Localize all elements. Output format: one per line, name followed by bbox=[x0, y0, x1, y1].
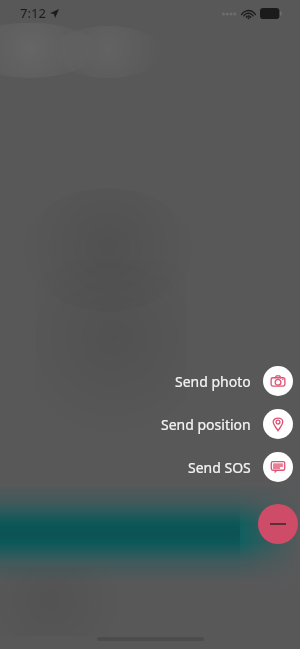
button[interactable]: Send photo bbox=[175, 366, 293, 396]
button[interactable]: Send position bbox=[161, 409, 293, 439]
button[interactable]: Send SOS bbox=[188, 452, 293, 482]
button[interactable]: Close actions menu bbox=[258, 504, 298, 544]
staticText: Send SOS bbox=[188, 458, 251, 477]
staticText: 7:12 bbox=[20, 4, 46, 22]
staticText: Send photo bbox=[175, 372, 251, 391]
staticText: Send position bbox=[161, 415, 251, 434]
